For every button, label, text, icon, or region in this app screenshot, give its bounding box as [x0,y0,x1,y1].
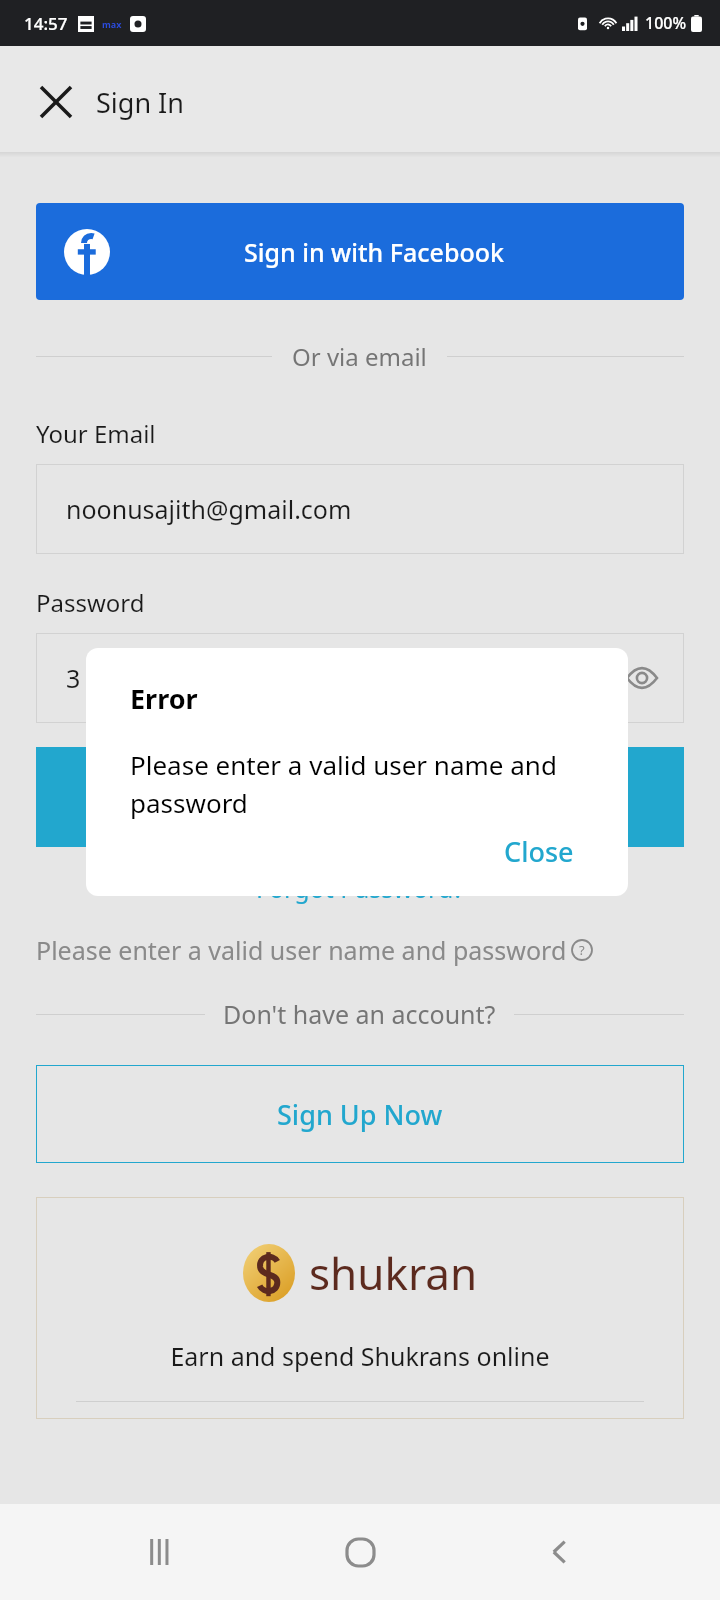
staticText: 14:57 [24,12,68,35]
staticText: noonusajith@gmail.com [66,492,352,526]
button[interactable]: Sign in with Facebook [36,203,684,300]
button[interactable]: Sign Up Now [36,1065,684,1163]
button[interactable]: shukran [36,1197,684,1419]
staticText: Please enter a valid user name and passw… [36,933,567,967]
button[interactable]: noonusajith@gmail.com [36,464,684,554]
staticText: Please enter a valid user name and passw… [130,747,592,820]
staticText: Or via email [292,340,427,373]
button[interactable]: 3 [36,633,684,723]
staticText: Your Email [36,417,156,450]
button[interactable]: Show password [622,658,662,698]
staticText: Earn and spend Shukrans online [170,1339,550,1373]
button[interactable]: Back [520,1512,600,1592]
staticText: shukran [309,1243,478,1303]
staticText: Password [36,586,145,619]
staticText: Error [130,680,198,717]
staticText: Sign Up Now [277,1096,443,1133]
button[interactable]: Close [30,76,82,128]
staticText: Sign In [96,84,184,121]
staticText: 100% [645,12,687,34]
staticText: Sign in with Facebook [244,235,504,269]
button[interactable]: Sign In [36,747,684,847]
button[interactable]: Close [494,825,584,878]
button[interactable]: Forgot Password? [250,865,471,911]
staticText: ? [579,941,585,959]
button[interactable]: Home [320,1512,400,1592]
staticText: 3 [66,661,81,695]
button[interactable]: Recents [120,1512,200,1592]
staticText: max [102,18,122,30]
staticText: Don't have an account? [223,997,496,1031]
button[interactable]: Help [570,938,594,962]
